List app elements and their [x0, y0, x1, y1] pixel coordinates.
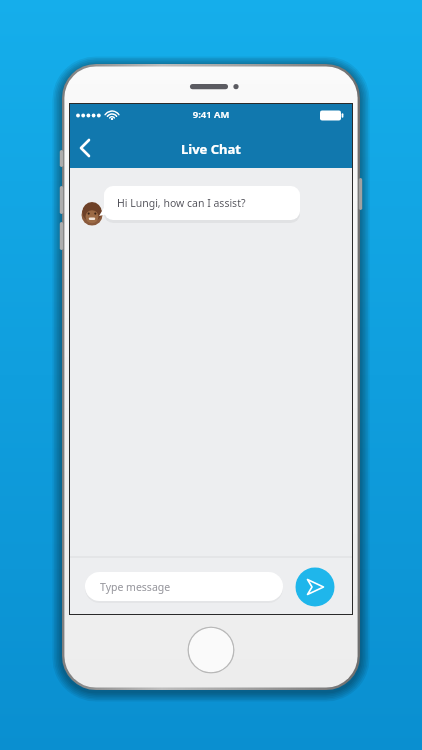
staticText: Live Chat: [161, 140, 261, 158]
button[interactable]: Home: [188, 627, 234, 673]
staticText: Hi Lungi, how can I assist?: [117, 196, 246, 210]
button[interactable]: Hi Lungi, how can I assist?: [104, 186, 300, 220]
staticText: 9:41 AM: [181, 108, 241, 122]
staticText: Type message: [100, 580, 171, 594]
button[interactable]: Back: [72, 131, 106, 165]
button[interactable]: Send: [295, 567, 335, 607]
button[interactable]: Type message: [85, 572, 283, 601]
